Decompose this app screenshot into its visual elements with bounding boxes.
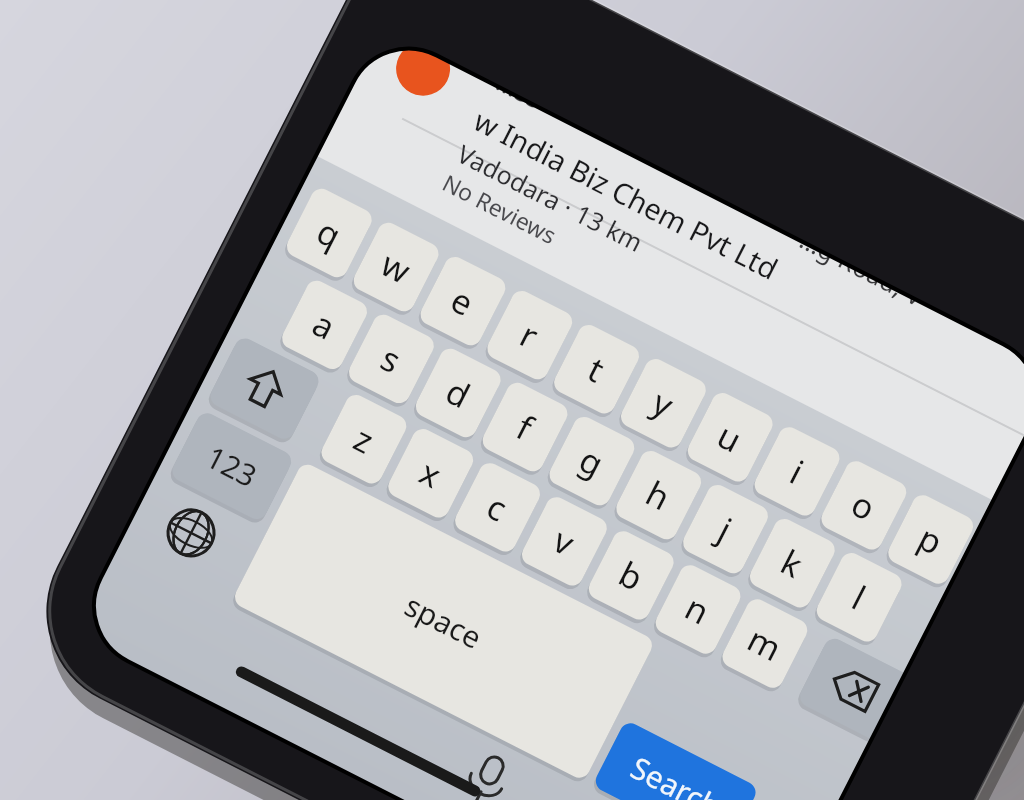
other: iPhone keyboard photo bbox=[0, 0, 1024, 800]
button[interactable]: Search bbox=[695, 600, 845, 710]
button[interactable]: Delete bbox=[805, 480, 900, 570]
button[interactable]: Shift bbox=[258, 200, 358, 290]
button[interactable] bbox=[0, 0, 1024, 800]
button[interactable]: Numbers bbox=[230, 295, 370, 390]
button[interactable]: Dictate bbox=[655, 625, 745, 715]
button[interactable]: Switch keyboard bbox=[165, 365, 260, 455]
button[interactable]: space bbox=[350, 350, 670, 500]
